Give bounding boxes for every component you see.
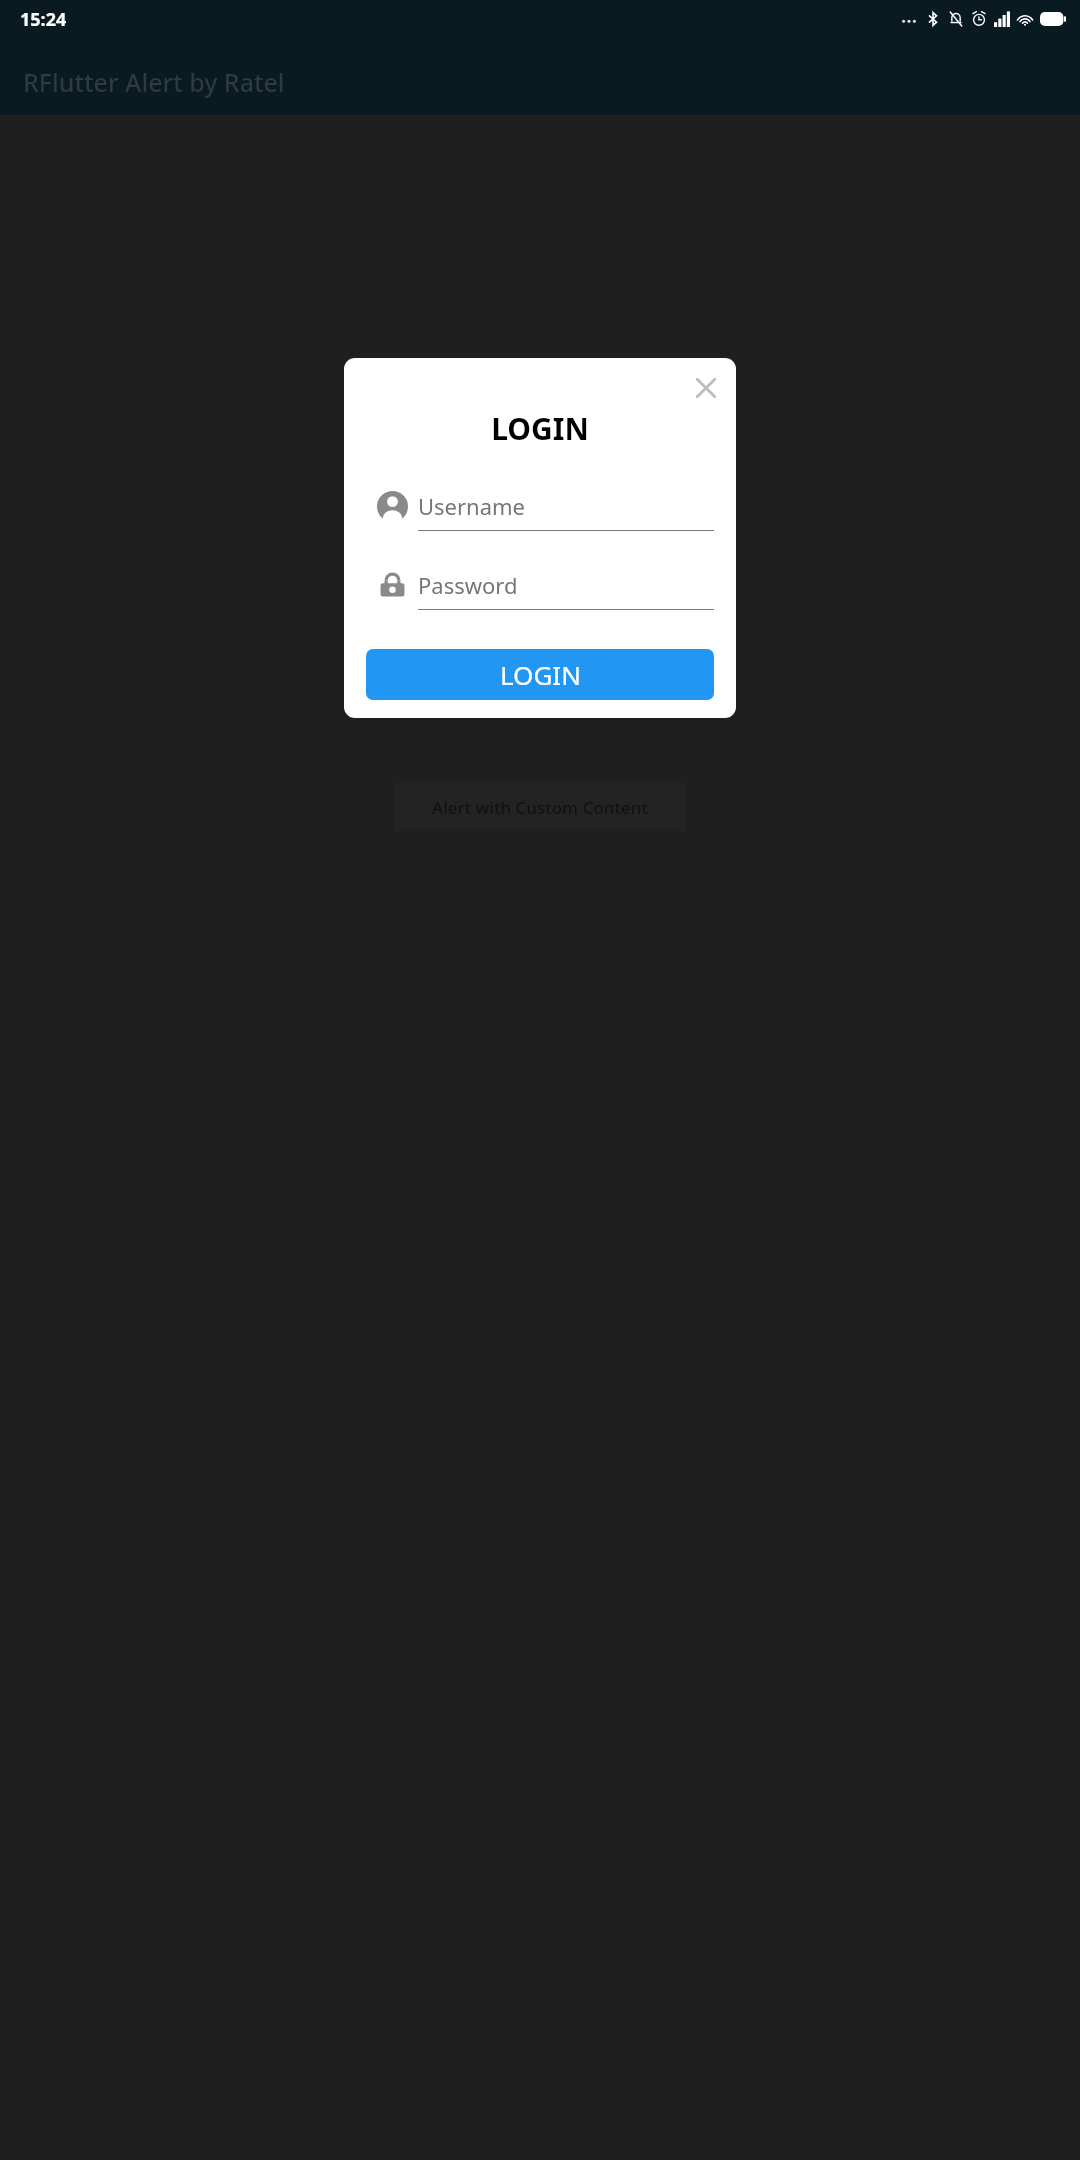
staticText: Password — [418, 570, 518, 600]
staticText: LOGIN — [500, 657, 581, 692]
staticText: LOGIN — [366, 408, 714, 449]
button[interactable]: Username — [366, 482, 714, 544]
staticText: RFlutter Alert by Ratel — [23, 65, 285, 99]
staticText: 15:24 — [20, 7, 67, 32]
staticText: Alert with Custom Content — [432, 796, 648, 819]
button[interactable]: LOGIN — [366, 649, 714, 700]
button[interactable]: Close — [684, 366, 728, 410]
button[interactable]: Alert with Custom Content — [394, 783, 686, 831]
staticText: Username — [418, 491, 526, 521]
button[interactable]: Password — [366, 561, 714, 623]
